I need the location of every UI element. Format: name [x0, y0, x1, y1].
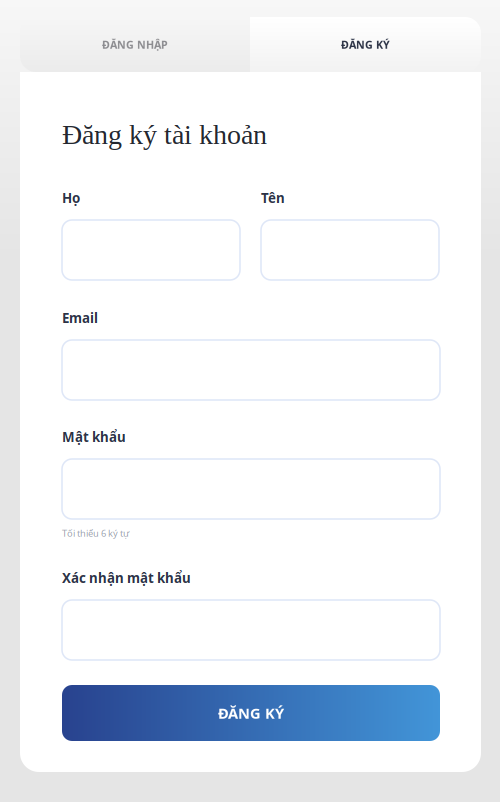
staticText: ĐĂNG KÝ: [341, 37, 390, 52]
staticText: Xác nhận mật khẩu: [62, 569, 191, 587]
staticText: ĐĂNG KÝ: [218, 703, 284, 723]
button[interactable]: ĐĂNG KÝ: [250, 17, 481, 72]
button[interactable]: Email: [62, 309, 440, 400]
staticText: Mật khẩu: [62, 428, 126, 446]
staticText: Tối thiểu 6 ký tự: [62, 527, 129, 539]
button[interactable]: ĐĂNG KÝ: [62, 685, 440, 741]
button[interactable]: Tên: [261, 189, 439, 280]
staticText: Email: [62, 309, 98, 327]
button[interactable]: Xác nhận mật khẩu: [62, 569, 440, 660]
staticText: Tên: [261, 189, 285, 207]
button[interactable]: ĐĂNG NHẬP: [20, 17, 250, 72]
button[interactable]: Họ: [62, 189, 240, 280]
staticText: Họ: [62, 189, 80, 207]
staticText: ĐĂNG NHẬP: [102, 37, 168, 52]
button[interactable]: Mật khẩu: [62, 428, 440, 519]
staticText: Đăng ký tài khoản: [62, 119, 267, 150]
